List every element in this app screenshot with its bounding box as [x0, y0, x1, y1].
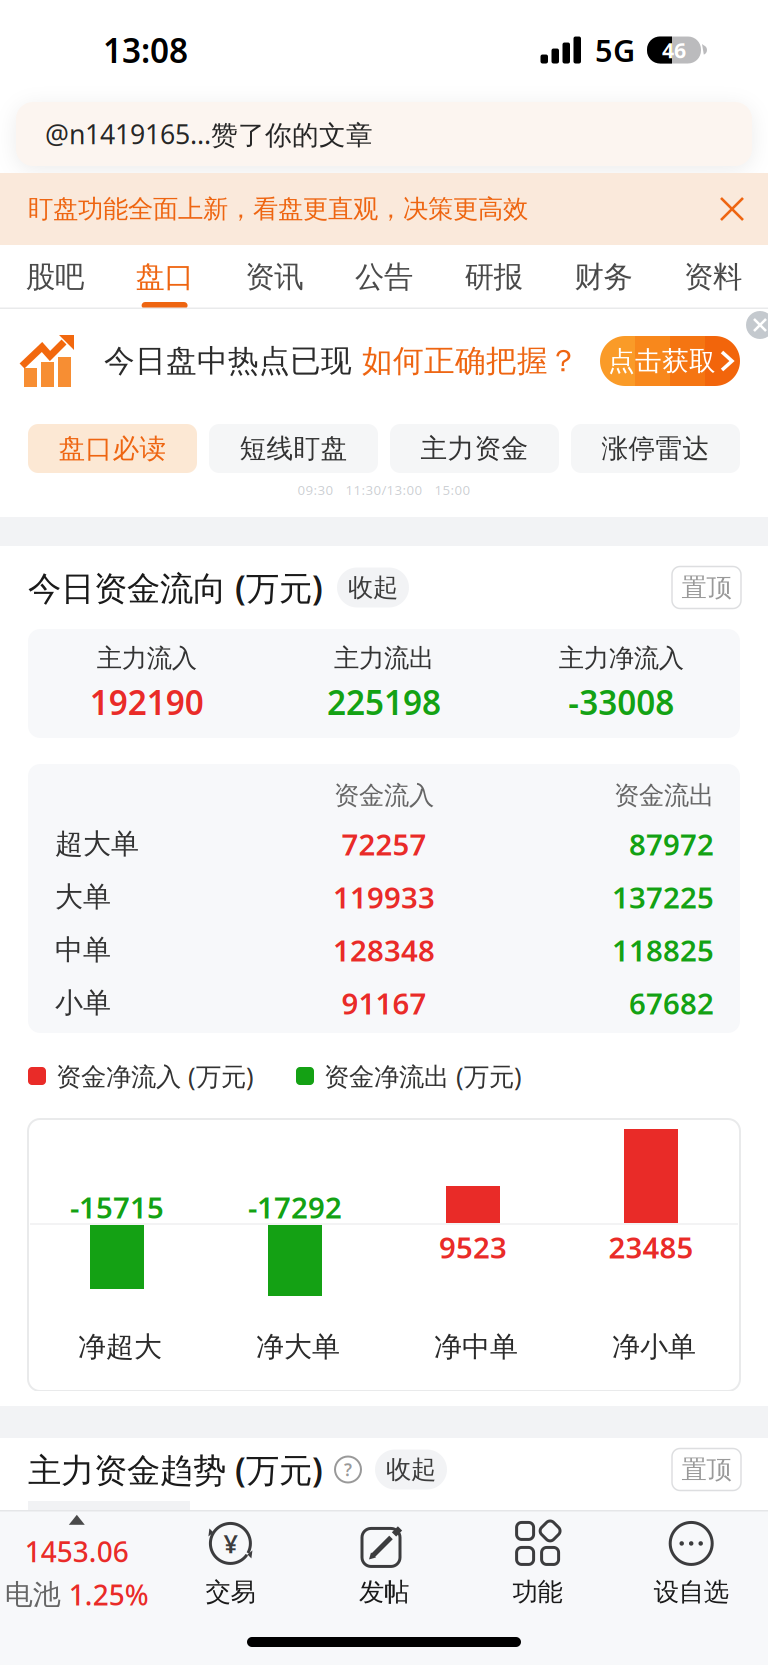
staticText: 资讯	[245, 259, 303, 295]
button[interactable]: 盘口必读	[28, 424, 197, 473]
staticText: 67682	[629, 983, 714, 1022]
staticText: 192190	[90, 680, 204, 724]
button[interactable]: 发帖	[307, 1518, 461, 1610]
staticText: 公告	[355, 259, 413, 295]
staticText: 128348	[333, 930, 435, 969]
staticText: 大单	[55, 880, 111, 914]
staticText: 资金流出	[614, 780, 714, 811]
staticText: -33008	[568, 680, 674, 724]
staticText: 置顶	[681, 1454, 731, 1485]
staticText: 净小单	[612, 1330, 696, 1364]
button[interactable]: 资料	[658, 245, 768, 309]
button[interactable]: @n1419165...赞了你的文章	[16, 102, 752, 166]
staticText: 发帖	[359, 1576, 409, 1607]
staticText: 如何正确把握？	[362, 342, 579, 380]
button[interactable]: 资讯	[219, 245, 329, 309]
button[interactable]: 研报	[439, 245, 548, 309]
staticText: 盘口必读	[58, 432, 166, 465]
staticText: 财务	[574, 259, 632, 295]
staticText: 主力净流入	[559, 643, 684, 674]
staticText: 87972	[629, 824, 714, 863]
staticText: 主力流出	[334, 643, 434, 674]
staticText: 交易	[205, 1576, 255, 1607]
staticText: 盘口	[136, 259, 194, 295]
staticText: 137225	[612, 877, 714, 916]
button[interactable]: ¥	[154, 1518, 307, 1610]
staticText: 主力资金	[420, 432, 528, 465]
staticText: 13:08	[103, 28, 188, 72]
button[interactable]: 收起	[375, 1449, 447, 1489]
staticText: 5G	[595, 30, 635, 70]
staticText: 收起	[386, 1454, 436, 1485]
staticText: 置顶	[681, 572, 731, 603]
staticText: 今日资金流向 (万元)	[28, 565, 323, 610]
button[interactable]: 关闭推广	[746, 311, 768, 339]
staticText: 净中单	[434, 1330, 518, 1364]
staticText: 小单	[55, 986, 111, 1020]
staticText: -17292	[248, 1187, 342, 1226]
button[interactable]: 股吧	[0, 245, 110, 309]
button[interactable]: 关闭	[712, 189, 752, 229]
staticText: 1453.06	[25, 1533, 129, 1570]
staticText: 盯盘功能全面上新，看盘更直观，决策更高效	[28, 193, 528, 224]
staticText: 9523	[439, 1227, 507, 1266]
staticText: 电池	[5, 1577, 61, 1612]
staticText: 主力流入	[97, 643, 197, 674]
staticText: 涨停雷达	[601, 432, 709, 465]
staticText: 主力资金趋势 (万元)	[28, 1447, 323, 1492]
button[interactable]: 置顶	[672, 566, 741, 608]
staticText: 点击获取	[608, 345, 716, 377]
staticText: 119933	[333, 877, 435, 916]
button[interactable]: 涨停雷达	[571, 424, 740, 473]
staticText: 今日盘中热点已现	[104, 342, 352, 380]
staticText: @n1419165...赞了你的文章	[45, 116, 373, 152]
button[interactable]: 主力资金	[390, 424, 559, 473]
staticText: 收起	[348, 572, 398, 603]
button[interactable]: 财务	[548, 245, 658, 309]
staticText: 设自选	[654, 1576, 729, 1607]
staticText: 净大单	[256, 1330, 340, 1364]
staticText: 225198	[327, 680, 441, 724]
staticText: 股吧	[26, 259, 84, 295]
staticText: -15715	[70, 1187, 164, 1226]
button[interactable]: 点击获取	[600, 336, 740, 386]
button[interactable]: 短线盯盘	[209, 424, 378, 473]
staticText: 资金流入	[334, 780, 434, 811]
staticText: 23485	[608, 1227, 693, 1266]
staticText: 净超大	[78, 1330, 162, 1364]
button[interactable]: 公告	[329, 245, 439, 309]
button[interactable]: 设自选	[614, 1518, 768, 1610]
staticText: ?	[344, 1458, 352, 1481]
staticText: 资金净流入 (万元)	[56, 1059, 254, 1093]
button[interactable]: 说明	[333, 1454, 363, 1484]
staticText: 资金净流出 (万元)	[324, 1059, 522, 1093]
staticText: 72257	[341, 824, 426, 863]
staticText: 中单	[55, 933, 111, 967]
staticText: ¥	[223, 1527, 237, 1560]
button[interactable]: 盘口	[110, 245, 219, 309]
staticText: 短线盯盘	[239, 432, 347, 465]
button[interactable]: 置顶	[672, 1448, 741, 1490]
staticText: 功能	[513, 1576, 563, 1607]
button[interactable]: 功能	[461, 1518, 614, 1610]
staticText: 研报	[465, 259, 523, 295]
staticText: 09:30 11:30/13:00 15:00	[297, 481, 470, 499]
staticText: 118825	[612, 930, 714, 969]
staticText: 91167	[341, 983, 426, 1022]
button[interactable]: 收起	[337, 567, 409, 607]
button[interactable]: 1453.06	[0, 1518, 154, 1610]
staticText: 1.25%	[69, 1576, 149, 1613]
staticText: 超大单	[55, 827, 139, 861]
staticText: 46	[662, 36, 686, 64]
staticText: 资料	[684, 259, 742, 295]
